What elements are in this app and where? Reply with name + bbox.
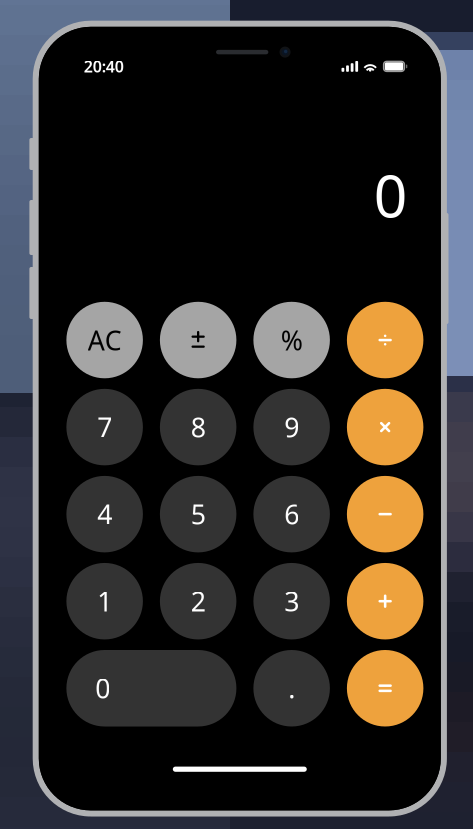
staticText: 5 <box>191 496 206 532</box>
staticText: 0 <box>95 670 110 706</box>
staticText: 3 <box>284 583 299 619</box>
button[interactable]: Minus <box>347 476 423 552</box>
staticText: 20:40 <box>84 56 124 77</box>
staticText: 9 <box>284 409 299 445</box>
button[interactable]: 0 <box>66 650 236 726</box>
button[interactable]: 9 <box>253 389 330 465</box>
button[interactable]: AC <box>66 302 143 378</box>
button[interactable]: 4 <box>66 476 143 552</box>
button[interactable]: % <box>253 302 330 378</box>
button[interactable]: 1 <box>66 563 143 639</box>
staticText: 1 <box>97 583 112 619</box>
staticText: % <box>281 322 303 358</box>
button[interactable]: 7 <box>66 389 143 465</box>
button[interactable]: Divide <box>347 302 423 378</box>
staticText: AC <box>88 322 122 358</box>
button[interactable]: Plus <box>347 563 423 639</box>
button[interactable]: 6 <box>253 476 330 552</box>
button[interactable]: 2 <box>160 563 236 639</box>
button[interactable]: 5 <box>160 476 236 552</box>
staticText: . <box>288 670 295 706</box>
button[interactable]: . <box>253 650 330 726</box>
button[interactable]: Multiply <box>347 389 423 465</box>
staticText: 8 <box>191 409 206 445</box>
button[interactable]: Equals <box>347 650 423 726</box>
button[interactable]: Plus minus <box>160 302 236 378</box>
staticText: 7 <box>97 409 112 445</box>
staticText: 2 <box>191 583 206 619</box>
staticText: 0 <box>374 156 408 234</box>
staticText: 4 <box>97 496 112 532</box>
button[interactable]: 3 <box>253 563 330 639</box>
staticText: 6 <box>284 496 299 532</box>
button[interactable]: 8 <box>160 389 236 465</box>
